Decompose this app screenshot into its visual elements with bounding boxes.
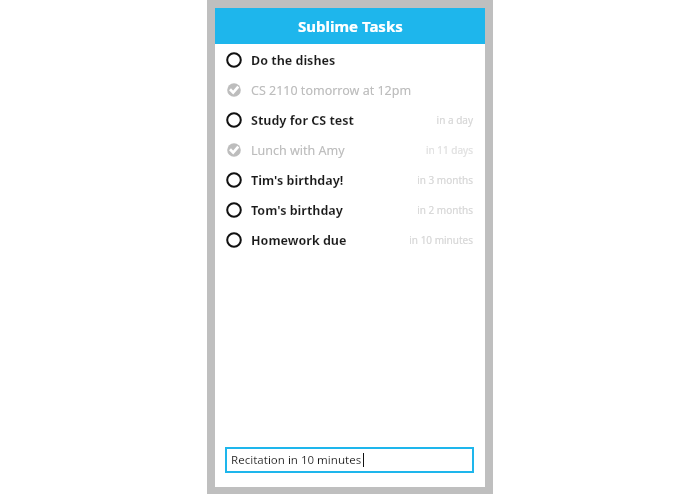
button[interactable]: Homework due <box>215 225 485 255</box>
staticText: Recitation in 10 minutes <box>231 452 362 468</box>
staticText: in 11 days <box>425 143 473 157</box>
button[interactable]: New task input <box>225 447 474 473</box>
staticText: Do the dishes <box>251 52 336 69</box>
staticText: Sublime Tasks <box>298 16 403 36</box>
button[interactable]: CS 2110 tomorrow at 12pm <box>215 75 485 105</box>
staticText: Lunch with Amy <box>251 142 345 159</box>
staticText: in 2 months <box>417 203 473 217</box>
staticText: in 10 minutes <box>409 233 473 247</box>
button[interactable]: Lunch with Amy <box>215 135 485 165</box>
button[interactable]: Tom's birthday <box>215 195 485 225</box>
button[interactable]: Tim's birthday! <box>215 165 485 195</box>
staticText: in 3 months <box>417 173 473 187</box>
button[interactable]: Do the dishes <box>215 45 485 75</box>
staticText: CS 2110 tomorrow at 12pm <box>251 82 412 99</box>
staticText: Tom's birthday <box>251 202 343 219</box>
staticText: Study for CS test <box>251 112 354 129</box>
staticText: in a day <box>436 113 473 127</box>
button[interactable]: Study for CS test <box>215 105 485 135</box>
staticText: Tim's birthday! <box>251 172 344 189</box>
staticText: Homework due <box>251 232 347 249</box>
